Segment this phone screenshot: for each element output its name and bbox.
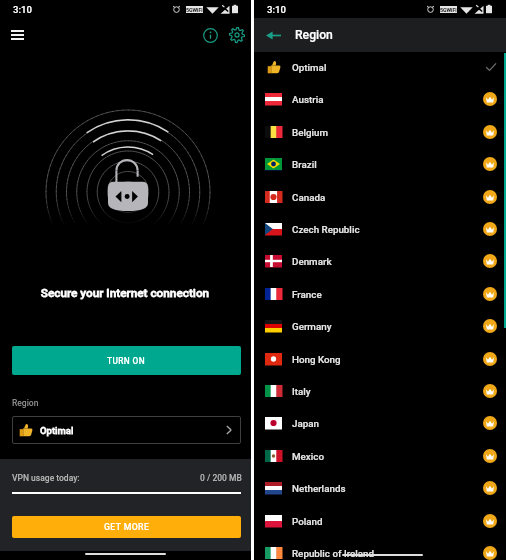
- staticText: Region: [295, 28, 333, 42]
- staticText: Italy: [292, 386, 311, 397]
- staticText: Poland: [292, 516, 323, 527]
- staticText: Belgium: [292, 127, 328, 138]
- staticText: Hong Kong: [292, 354, 341, 365]
- button[interactable]: Canada: [254, 181, 506, 213]
- staticText: Czech Republic: [292, 224, 360, 235]
- staticText: Canada: [292, 192, 326, 203]
- staticText: Denmark: [292, 256, 332, 267]
- staticText: Republic of Ireland: [292, 548, 375, 559]
- button[interactable]: TURN ON: [12, 346, 241, 375]
- staticText: Germany: [292, 321, 332, 332]
- button[interactable]: Austria: [254, 83, 506, 115]
- staticText: 0 / 200 MB: [200, 473, 242, 483]
- button[interactable]: Germany: [254, 310, 506, 342]
- button[interactable]: Hong Kong: [254, 343, 506, 375]
- button[interactable]: Back: [260, 22, 286, 48]
- staticText: 5GWiFi: [440, 7, 457, 13]
- staticText: Secure your Internet connection: [0, 286, 250, 300]
- staticText: Netherlands: [292, 483, 346, 494]
- staticText: France: [292, 289, 322, 300]
- staticText: Austria: [292, 94, 324, 105]
- button[interactable]: Japan: [254, 407, 506, 439]
- button[interactable]: Republic of Ireland: [254, 537, 506, 560]
- button[interactable]: France: [254, 278, 506, 310]
- button[interactable]: Optimal: [254, 51, 506, 83]
- staticText: Optimal: [40, 425, 74, 436]
- button[interactable]: Netherlands: [254, 472, 506, 504]
- button[interactable]: Menu: [4, 22, 30, 48]
- button[interactable]: Optimal: [12, 416, 241, 444]
- staticText: Optimal: [292, 62, 327, 73]
- button[interactable]: Denmark: [254, 245, 506, 277]
- button[interactable]: Czech Republic: [254, 213, 506, 245]
- staticText: 3:10: [13, 4, 32, 15]
- button[interactable]: Brazil: [254, 148, 506, 180]
- staticText: Japan: [292, 418, 320, 429]
- button[interactable]: Settings: [224, 22, 250, 48]
- staticText: 5GWiFi: [186, 7, 203, 13]
- button[interactable]: Mexico: [254, 440, 506, 472]
- staticText: 3:10: [267, 4, 286, 15]
- staticText: GET MORE: [104, 522, 150, 532]
- staticText: VPN usage today:: [12, 473, 80, 483]
- staticText: TURN ON: [107, 356, 146, 366]
- button[interactable]: GET MORE: [12, 516, 241, 538]
- staticText: Region: [12, 398, 39, 408]
- button[interactable]: Info: [197, 22, 223, 48]
- staticText: Mexico: [292, 451, 324, 462]
- button[interactable]: Belgium: [254, 116, 506, 148]
- button[interactable]: Poland: [254, 505, 506, 537]
- staticText: Brazil: [292, 159, 317, 170]
- button[interactable]: Italy: [254, 375, 506, 407]
